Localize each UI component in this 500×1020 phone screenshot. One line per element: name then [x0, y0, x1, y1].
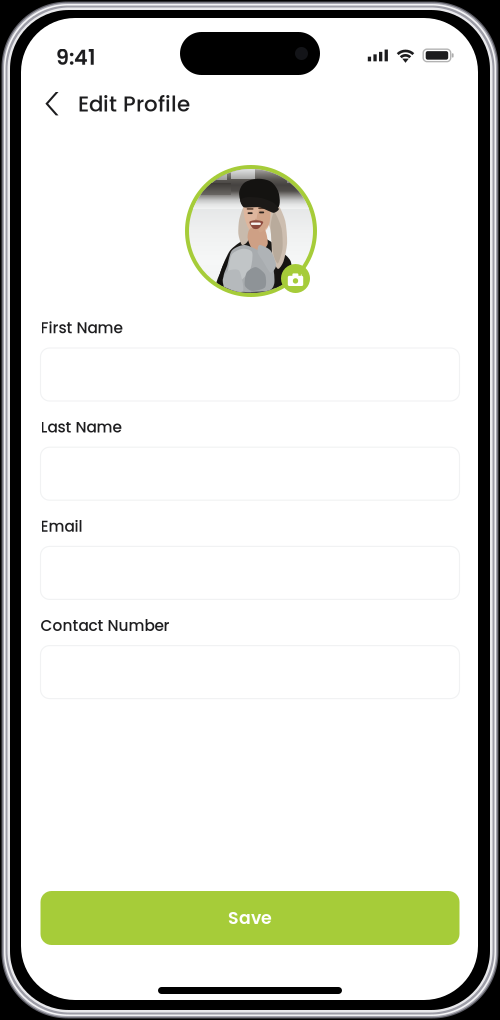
staticText: Edit Profile [78, 89, 190, 119]
staticText: Contact Number [40, 615, 169, 636]
button[interactable]: Change profile photo [185, 165, 317, 297]
button[interactable]: Back [35, 85, 69, 123]
staticText: 9:41 [56, 43, 95, 72]
staticText: Save [228, 906, 272, 930]
staticText: Last Name [40, 416, 121, 438]
button[interactable]: Save [40, 891, 459, 945]
staticText: Email [40, 516, 82, 537]
staticText: First Name [40, 317, 122, 339]
